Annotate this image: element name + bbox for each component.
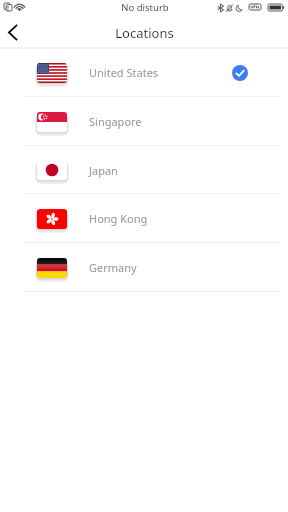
staticText: Germany xyxy=(89,260,137,275)
button[interactable]: Back xyxy=(0,16,28,48)
staticText: Hong Kong xyxy=(89,211,148,226)
staticText: Singapore xyxy=(89,114,142,129)
staticText: Japan xyxy=(89,163,118,178)
staticText: Locations xyxy=(115,24,174,42)
staticText: United States xyxy=(89,65,159,80)
button[interactable]: Japan xyxy=(0,146,288,194)
button[interactable]: Germany xyxy=(0,243,288,292)
button[interactable]: United States xyxy=(0,48,288,97)
button[interactable]: Singapore xyxy=(0,97,288,146)
button[interactable]: Hong Kong xyxy=(0,194,288,243)
staticText: No disturb xyxy=(121,1,169,14)
